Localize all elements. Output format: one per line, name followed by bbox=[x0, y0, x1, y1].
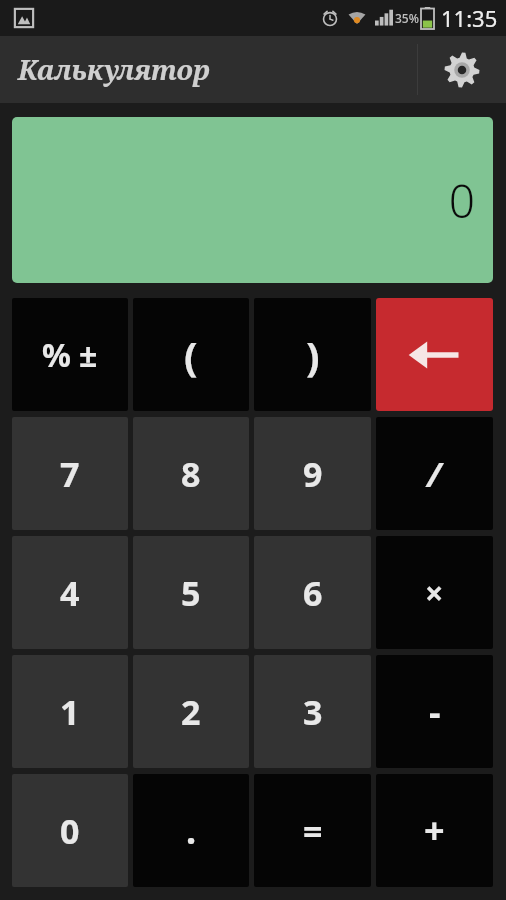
button[interactable]: 6 bbox=[254, 536, 371, 649]
staticText: - bbox=[429, 687, 441, 736]
staticText: . bbox=[186, 806, 197, 855]
staticText: ( bbox=[184, 328, 198, 382]
button[interactable]: = bbox=[254, 774, 371, 887]
button[interactable]: 5 bbox=[133, 536, 249, 649]
staticText: / bbox=[427, 451, 442, 497]
staticText: 3 bbox=[303, 689, 323, 735]
staticText: = bbox=[303, 808, 323, 854]
staticText: 1 bbox=[60, 689, 80, 735]
button[interactable]: × bbox=[376, 536, 493, 649]
staticText: 9 bbox=[303, 451, 323, 497]
staticText: 5 bbox=[181, 570, 201, 616]
staticText: 2 bbox=[181, 689, 201, 735]
button[interactable]: 1 bbox=[12, 655, 128, 768]
button[interactable]: 4 bbox=[12, 536, 128, 649]
button[interactable]: Percent and plus minus bbox=[12, 298, 128, 411]
staticText: ) bbox=[306, 328, 320, 382]
button[interactable]: ( bbox=[133, 298, 249, 411]
button[interactable]: - bbox=[376, 655, 493, 768]
button[interactable]: 7 bbox=[12, 417, 128, 530]
button[interactable]: / bbox=[376, 417, 493, 530]
staticText: % bbox=[42, 333, 71, 377]
staticText: 0 bbox=[448, 169, 475, 232]
staticText: 35% bbox=[395, 10, 419, 26]
button[interactable]: ) bbox=[254, 298, 371, 411]
staticText: 6 bbox=[303, 570, 323, 616]
staticText: 0 bbox=[60, 808, 80, 854]
staticText: 8 bbox=[181, 451, 201, 497]
button[interactable]: . bbox=[133, 774, 249, 887]
button[interactable]: 0 bbox=[12, 117, 493, 283]
staticText: ± bbox=[79, 333, 98, 377]
staticText: 7 bbox=[60, 451, 80, 497]
staticText: + bbox=[424, 806, 445, 855]
button[interactable]: + bbox=[376, 774, 493, 887]
button[interactable]: Settings bbox=[417, 36, 506, 103]
button[interactable]: 0 bbox=[12, 774, 128, 887]
staticText: Калькулятор bbox=[18, 51, 210, 88]
button[interactable]: 8 bbox=[133, 417, 249, 530]
button[interactable]: 9 bbox=[254, 417, 371, 530]
button[interactable]: 2 bbox=[133, 655, 249, 768]
button[interactable]: Backspace bbox=[376, 298, 493, 411]
staticText: × bbox=[425, 571, 444, 615]
button[interactable]: 3 bbox=[254, 655, 371, 768]
staticText: 4 bbox=[60, 570, 80, 616]
staticText: 11:35 bbox=[441, 3, 498, 33]
